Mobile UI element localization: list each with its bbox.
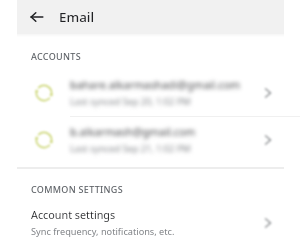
staticText: Email [59, 8, 95, 26]
button[interactable]: Back [24, 4, 50, 30]
staticText: COMMON SETTINGS [31, 183, 123, 195]
staticText: Account settings [31, 207, 116, 222]
button[interactable]: bahare.alkarmashadi@gmail.com [17, 69, 284, 116]
button[interactable]: b.alkarmash@gmail.com [17, 116, 284, 163]
staticText: bahare.alkarmashadi@gmail.com [70, 77, 241, 92]
staticText: ACCOUNTS [31, 50, 81, 62]
staticText: Last synced Sep 21, 1:02 PM [70, 142, 191, 155]
staticText: Last synced Sep 20, 1:02 PM [70, 95, 191, 108]
staticText: b.alkarmash@gmail.com [70, 124, 196, 139]
staticText: Sync frequency, notifications, etc. [31, 225, 175, 238]
button[interactable]: Account settings [17, 199, 284, 245]
